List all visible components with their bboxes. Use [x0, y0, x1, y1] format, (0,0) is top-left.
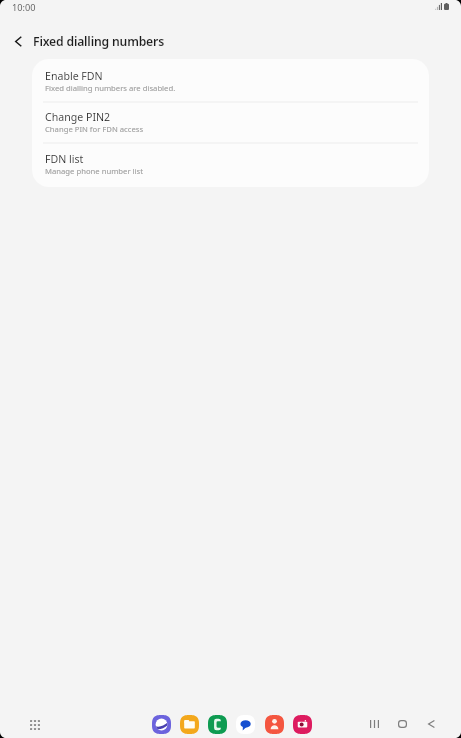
button[interactable]: Change PIN2 — [32, 102, 429, 143]
button[interactable]: Navigate up — [7, 30, 30, 53]
button[interactable]: Recent apps — [364, 714, 384, 734]
staticText: Change PIN2 — [45, 110, 111, 124]
button[interactable]: Back — [421, 714, 441, 734]
button[interactable]: Camera — [293, 715, 312, 734]
button[interactable]: Phone — [208, 715, 227, 734]
button[interactable]: Home — [392, 714, 412, 734]
button[interactable]: Apps — [24, 714, 45, 735]
button[interactable]: Internet — [152, 715, 171, 734]
staticText: FDN list — [45, 152, 84, 166]
staticText: Enable FDN — [45, 69, 103, 83]
staticText: Change PIN for FDN access — [45, 124, 144, 134]
button[interactable]: My Files — [180, 715, 199, 734]
button[interactable]: Contacts — [265, 715, 284, 734]
button[interactable]: Messages — [236, 715, 255, 734]
staticText: 10:00 — [12, 1, 36, 14]
staticText: Fixed dialling numbers — [33, 33, 164, 50]
button[interactable]: Enable FDN — [32, 59, 429, 102]
staticText: Manage phone number list — [45, 166, 143, 176]
staticText: Fixed dialling numbers are disabled. — [45, 83, 176, 93]
button[interactable]: FDN list — [32, 143, 429, 187]
